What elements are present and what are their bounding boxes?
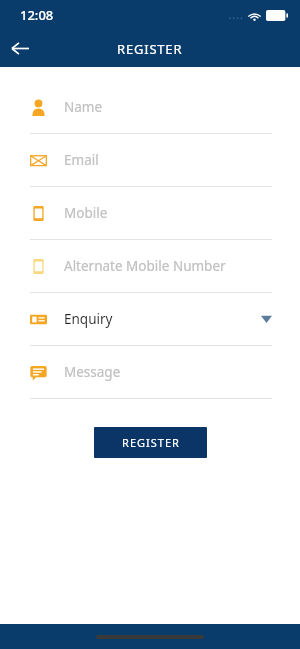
staticText: REGISTER (117, 40, 183, 58)
button[interactable]: Enquiry (0, 293, 300, 346)
staticText: Mobile (64, 204, 272, 222)
staticText: Message (64, 363, 272, 381)
button[interactable]: Mobile (0, 187, 300, 240)
staticText: REGISTER (122, 435, 180, 450)
button[interactable]: Back (0, 30, 40, 67)
staticText: Email (64, 151, 272, 169)
button[interactable]: Email (0, 134, 300, 187)
button[interactable]: REGISTER (94, 427, 207, 458)
staticText: Enquiry (64, 310, 261, 328)
button[interactable]: Alternate Mobile Number (0, 240, 300, 293)
staticText: Alternate Mobile Number (64, 257, 272, 275)
staticText: Name (64, 98, 272, 116)
button[interactable]: Message (0, 346, 300, 399)
staticText: 12:08 (20, 6, 54, 24)
button[interactable]: Name (0, 81, 300, 134)
